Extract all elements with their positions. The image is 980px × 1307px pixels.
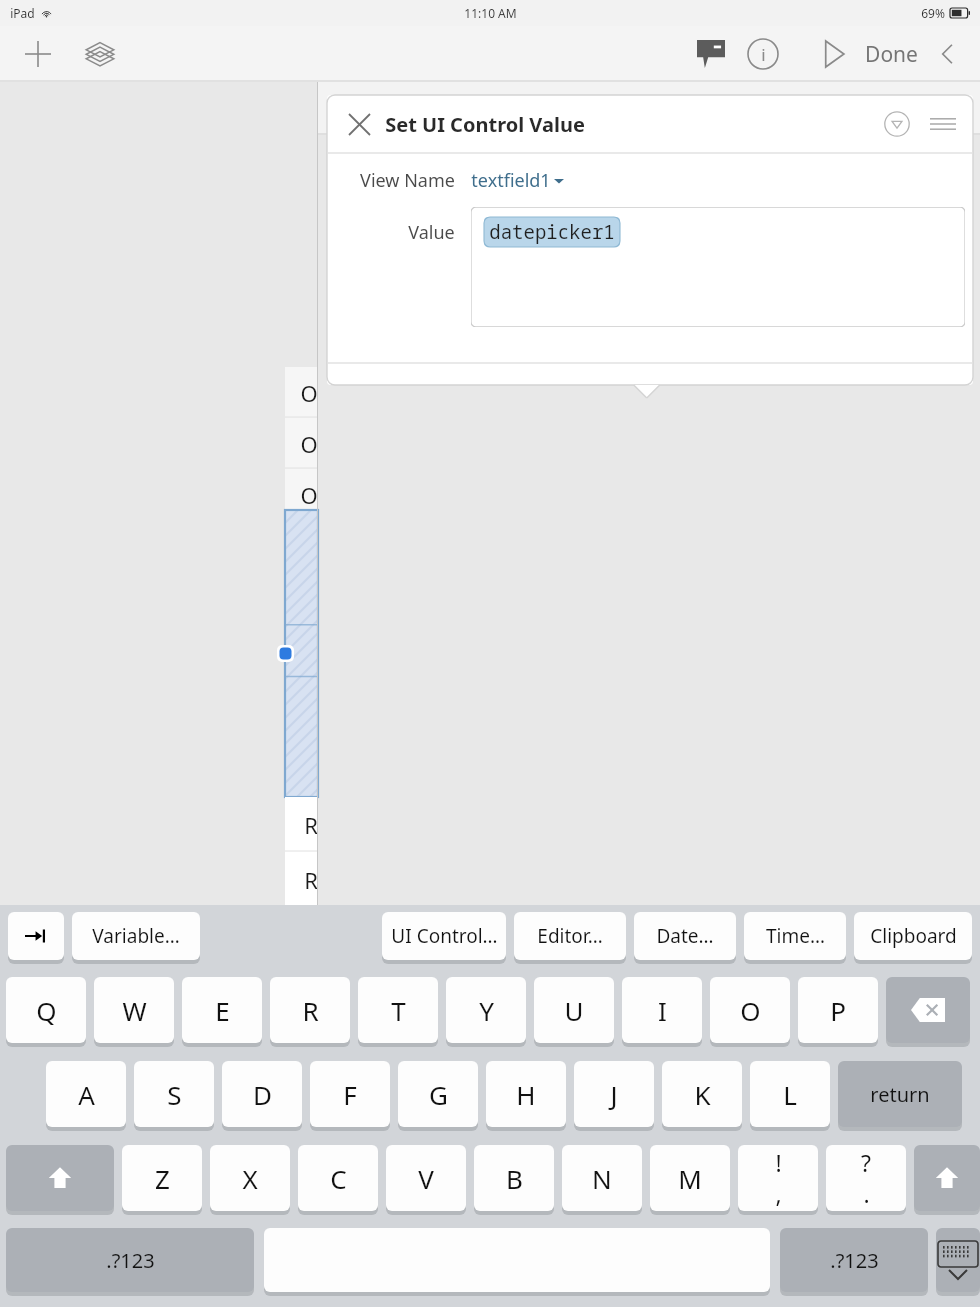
- button[interactable]: F: [310, 1061, 390, 1127]
- button[interactable]: P: [798, 977, 878, 1043]
- button[interactable]: return: [838, 1061, 962, 1127]
- button[interactable]: I: [622, 977, 702, 1043]
- button[interactable]: C: [298, 1145, 378, 1211]
- staticText: U: [564, 993, 584, 1028]
- button[interactable]: Z: [122, 1145, 202, 1211]
- button[interactable]: Clipboard: [854, 912, 972, 960]
- button[interactable]: Key: [914, 1145, 980, 1211]
- button[interactable]: Y: [446, 977, 526, 1043]
- staticText: Clipboard: [870, 923, 957, 949]
- button[interactable]: A: [46, 1061, 126, 1127]
- staticText: Y: [479, 993, 494, 1028]
- staticText: M: [678, 1161, 702, 1196]
- staticText: 69%: [921, 5, 945, 21]
- button[interactable]: U: [534, 977, 614, 1043]
- button[interactable]: UI Control…: [382, 912, 506, 960]
- staticText: E: [215, 993, 230, 1028]
- staticText: Set UI Control Value: [385, 111, 585, 138]
- button[interactable]: Menu: [923, 104, 963, 144]
- button[interactable]: H: [486, 1061, 566, 1127]
- staticText: Done: [865, 40, 918, 69]
- staticText: Variable…: [92, 923, 180, 949]
- staticText: O: [300, 429, 318, 459]
- staticText: F: [343, 1077, 357, 1112]
- button[interactable]: Add block: [334, 86, 380, 132]
- staticText: datepicker1 → value changed: [659, 95, 934, 122]
- staticText: 11:10 AM: [464, 5, 517, 21]
- staticText: datepicker1: [489, 219, 615, 245]
- button[interactable]: O: [710, 977, 790, 1043]
- button[interactable]: Key: [936, 1228, 980, 1292]
- button[interactable]: Key: [738, 1145, 818, 1211]
- staticText: P: [830, 993, 846, 1028]
- button[interactable]: E: [182, 977, 262, 1043]
- button[interactable]: X: [210, 1145, 290, 1211]
- button[interactable]: R: [270, 977, 350, 1043]
- button[interactable]: Editor…: [514, 912, 626, 960]
- staticText: !: [775, 1147, 782, 1178]
- staticText: textfield1: [471, 168, 551, 193]
- button[interactable]: Time…: [744, 912, 846, 960]
- button[interactable]: Close: [337, 102, 381, 146]
- button[interactable]: G: [398, 1061, 478, 1127]
- staticText: View Name: [360, 168, 455, 193]
- staticText: O: [740, 993, 761, 1028]
- button[interactable]: Key: [826, 1145, 906, 1211]
- button[interactable]: Info: [737, 28, 789, 80]
- button[interactable]: K: [662, 1061, 742, 1127]
- button[interactable]: V: [386, 1145, 466, 1211]
- staticText: H: [516, 1077, 536, 1112]
- button[interactable]: Done: [865, 40, 918, 69]
- staticText: Date…: [656, 923, 714, 949]
- staticText: .?123: [830, 1247, 879, 1274]
- staticText: W: [122, 993, 147, 1028]
- staticText: R: [304, 865, 318, 895]
- button[interactable]: .?123: [6, 1228, 254, 1292]
- button[interactable]: Key: [886, 977, 970, 1043]
- button[interactable]: J: [574, 1061, 654, 1127]
- staticText: N: [592, 1161, 612, 1196]
- staticText: K: [694, 1077, 711, 1112]
- staticText: B: [506, 1161, 523, 1196]
- staticText: C: [330, 1161, 347, 1196]
- button[interactable]: B: [474, 1145, 554, 1211]
- staticText: D: [253, 1077, 272, 1112]
- button[interactable]: L: [750, 1061, 830, 1127]
- staticText: .?123: [106, 1247, 155, 1274]
- button[interactable]: Back: [924, 30, 972, 78]
- staticText: J: [610, 1077, 618, 1112]
- button[interactable]: .?123: [780, 1228, 928, 1292]
- staticText: ?: [861, 1147, 871, 1178]
- button[interactable]: W: [94, 977, 174, 1043]
- button[interactable]: textfield1: [471, 168, 564, 193]
- staticText: X: [242, 1161, 258, 1196]
- button[interactable]: Key: [6, 1145, 114, 1211]
- button[interactable]: N: [562, 1145, 642, 1211]
- button[interactable]: Variable…: [72, 912, 200, 960]
- button[interactable]: Add: [14, 30, 62, 78]
- staticText: R: [304, 810, 318, 840]
- button[interactable]: S: [134, 1061, 214, 1127]
- staticText: O: [300, 480, 318, 510]
- staticText: O: [300, 378, 318, 408]
- staticText: UI Control…: [391, 923, 498, 949]
- button[interactable]: M: [650, 1145, 730, 1211]
- button[interactable]: Q: [6, 977, 86, 1043]
- staticText: return: [870, 1081, 930, 1108]
- button[interactable]: Comment: [685, 28, 737, 80]
- staticText: .: [863, 1178, 870, 1209]
- button[interactable]: Run: [807, 28, 859, 80]
- button[interactable]: D: [222, 1061, 302, 1127]
- button[interactable]: datepicker1: [471, 207, 965, 327]
- staticText: A: [78, 1077, 95, 1112]
- button[interactable]: Key: [8, 912, 64, 960]
- button[interactable]: Collapse: [877, 104, 917, 144]
- button[interactable]: Date…: [634, 912, 736, 960]
- staticText: G: [429, 1077, 448, 1112]
- button[interactable]: Layers: [76, 30, 124, 78]
- staticText: L: [783, 1077, 797, 1112]
- button[interactable]: T: [358, 977, 438, 1043]
- staticText: I: [658, 993, 667, 1028]
